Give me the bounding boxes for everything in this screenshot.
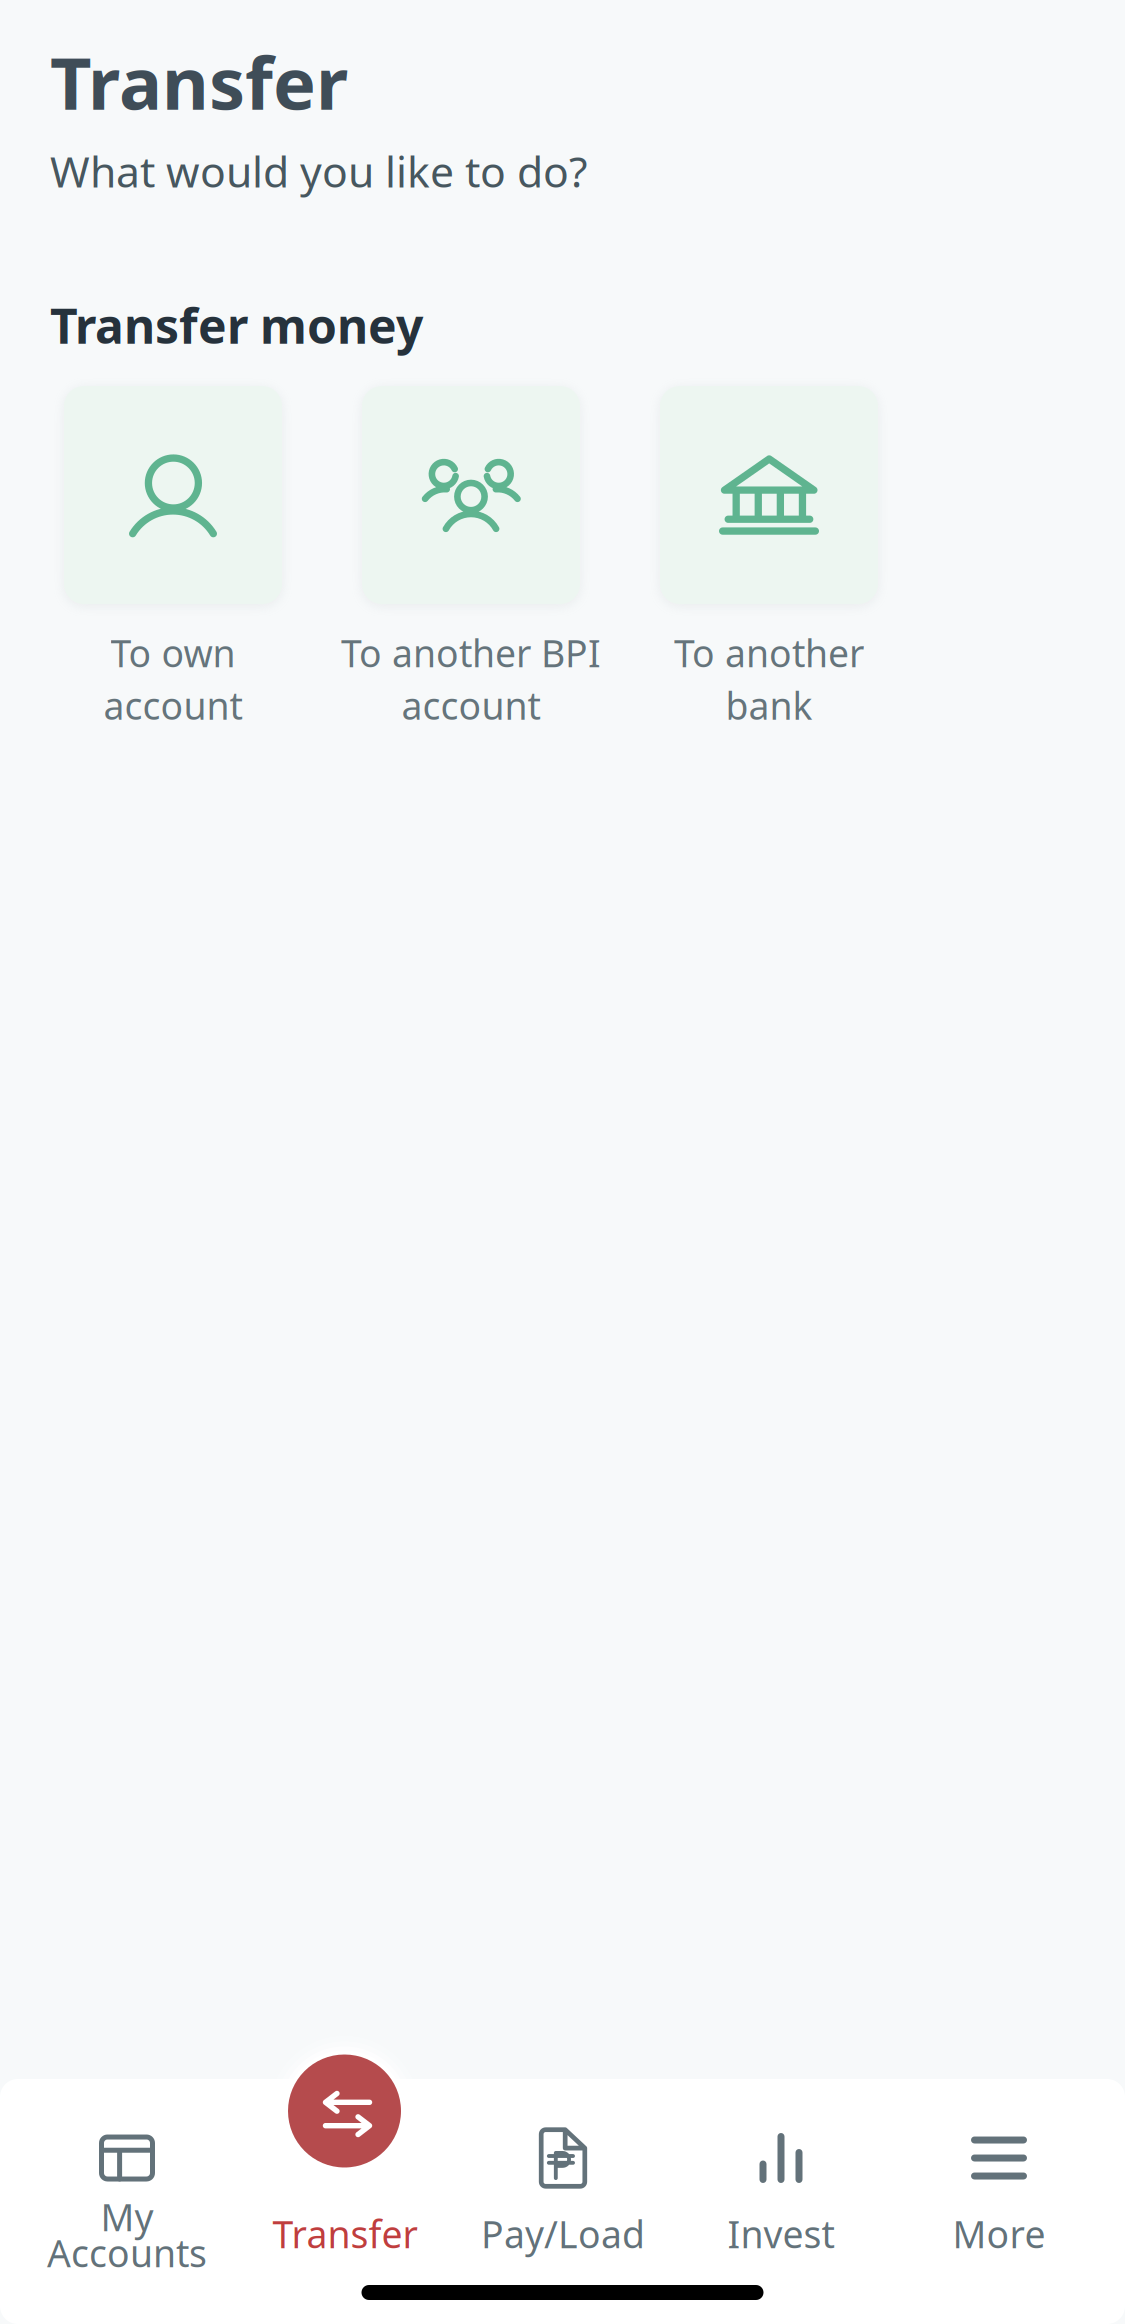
staticText: Invest	[727, 2209, 834, 2259]
staticText: To own	[110, 628, 235, 678]
staticText: Pay/Load	[481, 2209, 645, 2259]
button[interactable]: To another BPI	[362, 386, 580, 730]
staticText: More	[952, 2209, 1045, 2259]
button[interactable]: Transfer	[269, 2036, 419, 2186]
staticText: account	[103, 681, 242, 730]
button[interactable]: To own	[64, 386, 282, 730]
staticText: My	[100, 2192, 153, 2242]
button[interactable]: To another	[660, 386, 878, 730]
staticText: Accounts	[47, 2228, 207, 2278]
staticText: bank	[725, 681, 812, 730]
staticText: To another	[674, 628, 864, 678]
staticText: account	[401, 681, 540, 730]
button[interactable]: Invest	[672, 2079, 890, 2259]
staticText: Transfer money	[50, 293, 423, 357]
staticText: To another BPI	[341, 628, 601, 678]
button[interactable]: More	[890, 2079, 1108, 2259]
staticText: Transfer	[272, 2209, 417, 2259]
button[interactable]: My	[18, 2079, 236, 2259]
button[interactable]: Pay/Load	[454, 2079, 672, 2259]
button[interactable]: Transfer	[236, 2079, 454, 2259]
staticText: Transfer	[50, 34, 348, 130]
staticText: What would you like to do?	[50, 143, 588, 199]
